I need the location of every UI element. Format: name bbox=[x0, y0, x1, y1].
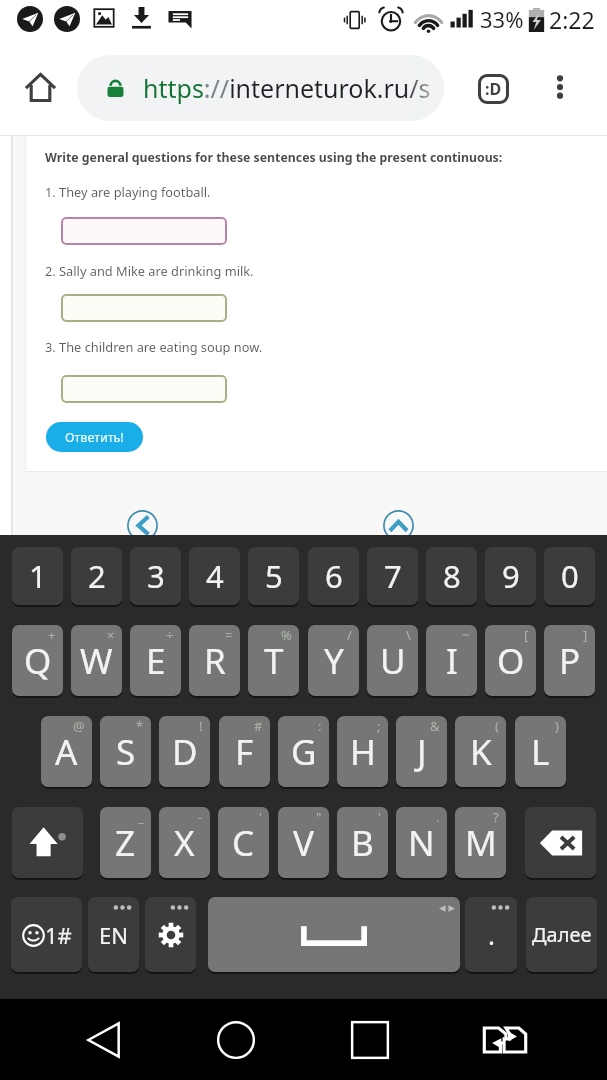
button[interactable]: Ответить! bbox=[46, 422, 143, 452]
button[interactable]: T bbox=[248, 625, 299, 696]
staticText: * bbox=[136, 717, 144, 735]
button[interactable]: Switch app bbox=[474, 1009, 536, 1071]
staticText: ( bbox=[495, 717, 499, 735]
button[interactable]: F bbox=[219, 716, 270, 787]
staticText: ] bbox=[583, 626, 588, 644]
button[interactable]: H bbox=[337, 716, 388, 787]
button[interactable]: W bbox=[71, 625, 122, 696]
staticText: 2:22 bbox=[549, 4, 595, 35]
staticText: T bbox=[264, 637, 284, 685]
button[interactable]: Home bbox=[14, 61, 66, 113]
button[interactable]: L bbox=[515, 716, 566, 787]
button[interactable]: Recents bbox=[339, 1009, 401, 1071]
button[interactable]: Backspace bbox=[525, 807, 596, 878]
button[interactable]: 3 bbox=[130, 547, 181, 605]
button[interactable]: 5 bbox=[248, 547, 299, 605]
button[interactable]: A bbox=[41, 716, 92, 787]
staticText: 7 bbox=[384, 555, 402, 597]
button[interactable]: D bbox=[159, 716, 210, 787]
button[interactable]: E bbox=[130, 625, 181, 696]
button[interactable]: 0 bbox=[544, 547, 595, 605]
button[interactable]: P bbox=[544, 625, 595, 696]
button[interactable]: U bbox=[367, 625, 418, 696]
button[interactable]: Y bbox=[308, 625, 359, 696]
button[interactable]: X bbox=[159, 807, 210, 878]
staticText: J bbox=[417, 728, 427, 776]
staticText: ~ bbox=[462, 626, 470, 644]
button[interactable]: Q bbox=[12, 625, 63, 696]
staticText: Write general questions for these senten… bbox=[45, 149, 503, 166]
staticText: 3. The children are eating soup now. bbox=[45, 338, 263, 355]
button[interactable]: Settings bbox=[145, 897, 196, 972]
button[interactable]: 8 bbox=[426, 547, 477, 605]
staticText: & bbox=[430, 717, 440, 735]
staticText: @ bbox=[73, 717, 85, 735]
button[interactable]: 6 bbox=[308, 547, 359, 605]
staticText: 2. Sally and Mike are drinking milk. bbox=[45, 262, 254, 279]
button[interactable]: M bbox=[455, 807, 506, 878]
button[interactable] bbox=[61, 294, 227, 322]
button[interactable]: https://interneturok.ru/s bbox=[77, 55, 444, 121]
button[interactable]: Z bbox=[100, 807, 151, 878]
staticText: . bbox=[436, 808, 440, 826]
staticText: \ bbox=[406, 626, 411, 644]
staticText: 1# bbox=[45, 920, 72, 950]
staticText: 4 bbox=[206, 555, 224, 597]
button[interactable]: N bbox=[396, 807, 447, 878]
button[interactable]: 9 bbox=[485, 547, 536, 605]
button[interactable]: 2 bbox=[71, 547, 122, 605]
button[interactable]: J bbox=[396, 716, 447, 787]
button[interactable]: Далее bbox=[526, 897, 597, 972]
button[interactable]: Shift bbox=[12, 807, 83, 878]
button[interactable]: EN bbox=[88, 897, 139, 972]
staticText: 6 bbox=[325, 555, 343, 597]
staticText: ) bbox=[555, 717, 559, 735]
staticText: Q bbox=[24, 637, 52, 685]
button[interactable]: V bbox=[278, 807, 329, 878]
button[interactable]: 1 bbox=[12, 547, 63, 605]
staticText: W bbox=[80, 637, 113, 685]
staticText: _ bbox=[138, 808, 144, 826]
button[interactable]: R bbox=[189, 625, 240, 696]
button[interactable]: Emoji and symbols bbox=[11, 897, 82, 972]
staticText: : bbox=[318, 717, 322, 735]
staticText: X bbox=[174, 819, 195, 867]
staticText: Далее bbox=[532, 921, 592, 948]
button[interactable]: Space bbox=[208, 897, 460, 972]
button[interactable]: I bbox=[426, 625, 477, 696]
staticText: B bbox=[351, 819, 374, 867]
staticText: . bbox=[488, 917, 495, 952]
button[interactable]: More options bbox=[534, 61, 586, 113]
button[interactable] bbox=[61, 217, 227, 245]
button[interactable]: C bbox=[218, 807, 269, 878]
staticText: 8 bbox=[443, 555, 461, 597]
button[interactable]: Back bbox=[72, 1009, 134, 1071]
button[interactable]: G bbox=[278, 716, 329, 787]
staticText: D bbox=[172, 728, 198, 776]
staticText: L bbox=[531, 728, 550, 776]
button[interactable]: S bbox=[100, 716, 151, 787]
staticText: ' bbox=[378, 808, 381, 826]
staticText: P bbox=[559, 637, 581, 685]
button[interactable]: B bbox=[337, 807, 388, 878]
staticText: 3 bbox=[147, 555, 165, 597]
button[interactable]: Home bbox=[205, 1009, 267, 1071]
staticText: F bbox=[235, 728, 254, 776]
button[interactable]: O bbox=[485, 625, 536, 696]
staticText: I bbox=[446, 637, 458, 685]
staticText: 33% bbox=[480, 4, 524, 34]
button[interactable]: 7 bbox=[367, 547, 418, 605]
staticText: × bbox=[107, 626, 115, 644]
button[interactable]: Period bbox=[465, 897, 517, 972]
staticText: [ bbox=[524, 626, 529, 644]
button[interactable]: K bbox=[455, 716, 506, 787]
button[interactable]: Previous bbox=[127, 510, 158, 541]
button[interactable] bbox=[61, 375, 227, 403]
button[interactable]: Tabs bbox=[462, 61, 524, 117]
staticText: 0 bbox=[561, 555, 579, 597]
staticText: :D bbox=[485, 78, 502, 100]
button[interactable]: 4 bbox=[189, 547, 240, 605]
staticText: / bbox=[347, 626, 352, 644]
staticText: N bbox=[408, 819, 435, 867]
button[interactable]: Scroll up bbox=[383, 510, 414, 541]
